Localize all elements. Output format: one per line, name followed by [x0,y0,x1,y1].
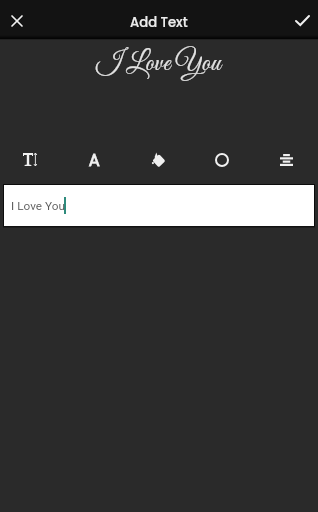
staticText: I Love You [11,199,65,213]
staticText: A [89,151,100,170]
button[interactable]: Text size [0,146,63,173]
button[interactable]: Close [0,0,33,39]
button[interactable]: Opacity [190,146,254,173]
button[interactable]: Align [254,146,318,173]
staticText: Add Text [130,13,188,31]
button[interactable]: Font [63,146,126,173]
button[interactable]: Fill colour [126,146,190,173]
staticText: I Love You [96,47,221,81]
button[interactable]: Done [285,0,318,39]
button[interactable]: I Love You [4,185,314,226]
